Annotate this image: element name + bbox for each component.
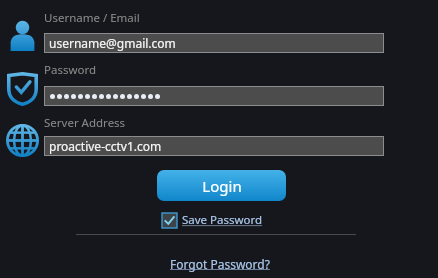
other: Username: [6, 19, 39, 51]
other: Save Password checkbox: [162, 213, 177, 228]
staticText: Server Address: [44, 115, 126, 131]
staticText: Forgot Password?: [170, 256, 270, 272]
staticText: Password: [44, 62, 97, 78]
button[interactable]: Forgot Password?: [168, 255, 272, 273]
button[interactable]: proactive-cctv1.com: [45, 137, 383, 155]
button[interactable]: [45, 87, 383, 105]
other: Server Address: [6, 124, 39, 157]
button[interactable]: Login: [157, 170, 286, 201]
button[interactable]: Save Password checkbox: [162, 212, 263, 228]
other: Password: [7, 72, 38, 106]
staticText: Username / Email: [44, 10, 140, 26]
staticText: Save Password: [182, 212, 263, 228]
staticText: proactive-cctv1.com: [49, 138, 162, 154]
button[interactable]: username@gmail.com: [45, 34, 383, 52]
staticText: Login: [202, 176, 242, 196]
staticText: username@gmail.com: [49, 35, 176, 51]
